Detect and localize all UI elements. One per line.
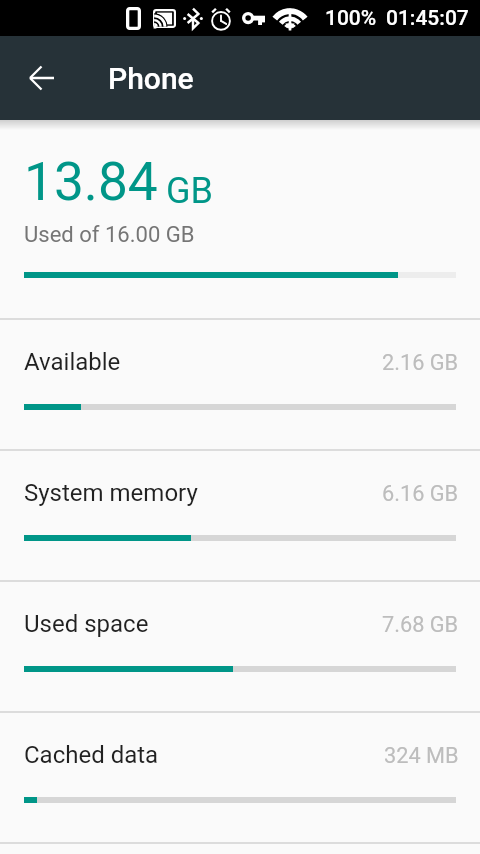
- staticText: Phone: [108, 61, 194, 96]
- staticText: Used space: [24, 610, 149, 638]
- staticText: System memory: [24, 479, 198, 507]
- staticText: Used of 16.00 GB: [24, 222, 195, 248]
- button[interactable]: System memory: [0, 449, 480, 580]
- staticText: 6.16 GB: [382, 481, 459, 506]
- staticText: 13.84: [24, 151, 158, 213]
- staticText: 2.16 GB: [382, 350, 459, 375]
- button[interactable]: Cached data: [0, 711, 480, 842]
- staticText: 01:45:07: [386, 6, 469, 31]
- staticText: 7.68 GB: [382, 612, 459, 637]
- staticText: Available: [24, 348, 121, 376]
- button[interactable]: Navigate up: [12, 48, 72, 108]
- staticText: 324 MB: [384, 743, 459, 768]
- button[interactable]: Used space: [0, 580, 480, 711]
- staticText: GB: [166, 170, 213, 212]
- staticText: 100%: [325, 6, 377, 31]
- button[interactable]: Available: [0, 318, 480, 449]
- staticText: Cached data: [24, 741, 159, 769]
